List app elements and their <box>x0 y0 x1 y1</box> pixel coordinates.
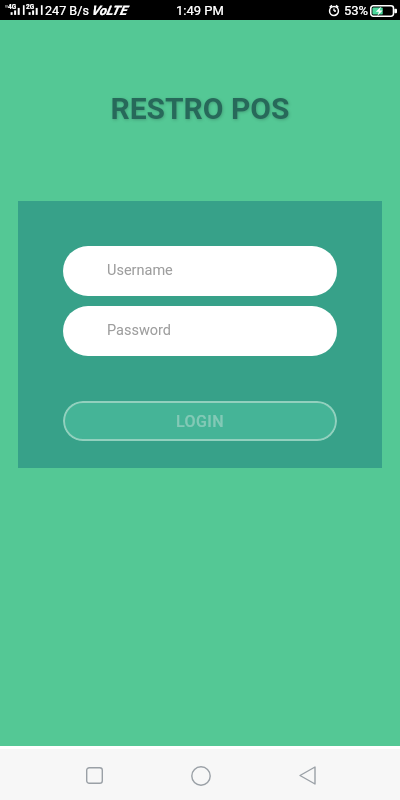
staticText: 247 B/s <box>45 3 89 18</box>
button[interactable]: Home <box>176 751 225 800</box>
staticText: VoLTE <box>91 3 127 18</box>
staticText: RESTRO POS <box>0 91 400 126</box>
staticText: 1:49 PM <box>176 3 224 18</box>
button[interactable]: Recent apps <box>70 751 119 800</box>
staticText: Password <box>107 322 172 339</box>
button[interactable]: Password <box>63 306 337 356</box>
button[interactable]: Username <box>63 246 337 296</box>
staticText: 4G <box>8 3 17 11</box>
staticText: LOGIN <box>176 412 224 431</box>
staticText: 53% <box>344 3 369 18</box>
button[interactable]: LOGIN <box>63 401 337 441</box>
staticText: Username <box>107 262 173 279</box>
staticText: 2G <box>26 3 35 11</box>
button[interactable]: Back <box>283 751 332 800</box>
